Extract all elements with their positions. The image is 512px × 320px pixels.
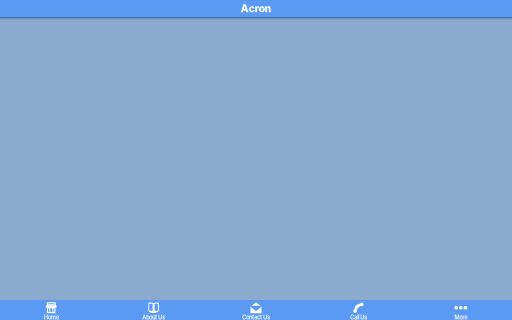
staticText: Home xyxy=(44,314,59,320)
button[interactable]: Contact Us xyxy=(205,300,307,320)
button[interactable]: About Us xyxy=(102,300,205,320)
staticText: More xyxy=(454,314,467,320)
button[interactable]: Call Us xyxy=(307,300,410,320)
staticText: Contact Us xyxy=(242,314,270,320)
staticText: About Us xyxy=(142,314,165,320)
button[interactable]: More xyxy=(410,300,512,320)
staticText: Acron xyxy=(240,2,271,15)
staticText: Call Us xyxy=(350,314,367,320)
button[interactable]: Home xyxy=(0,300,102,320)
